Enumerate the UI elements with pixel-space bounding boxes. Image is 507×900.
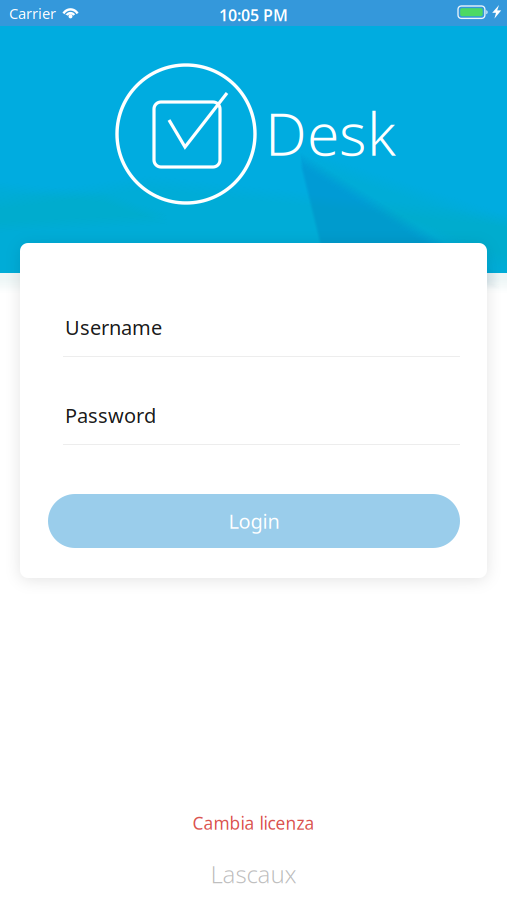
staticText: Login	[228, 508, 279, 534]
staticText: Password	[65, 402, 156, 429]
button[interactable]: Login	[48, 494, 460, 548]
staticText: Cambia licenza	[192, 811, 314, 834]
staticText: Desk	[265, 94, 396, 172]
staticText: Username	[65, 314, 162, 341]
staticText: 10:05 PM	[219, 4, 288, 26]
staticText: Carrier	[9, 3, 56, 23]
staticText: Lascaux	[210, 858, 296, 890]
button[interactable]: Cambia licenza	[0, 811, 507, 835]
